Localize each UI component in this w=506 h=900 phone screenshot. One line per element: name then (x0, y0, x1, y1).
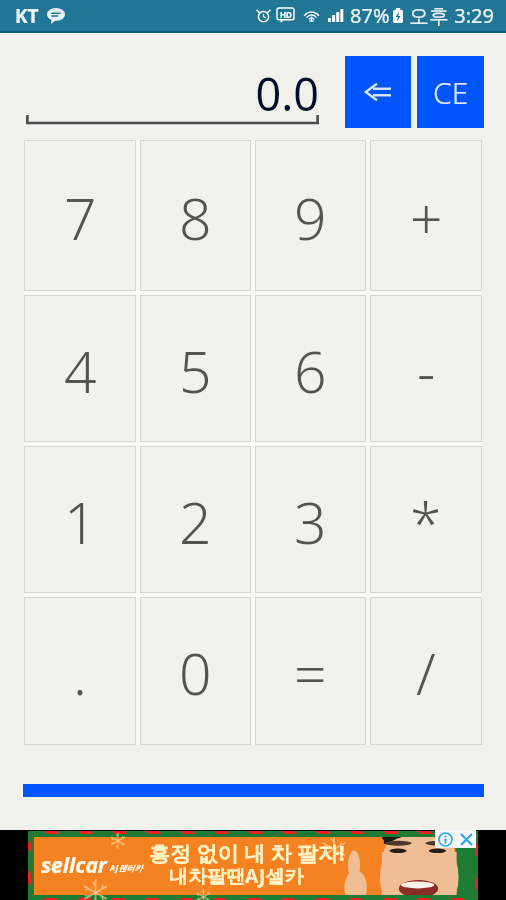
staticText: HD (280, 9, 292, 20)
staticText: . (73, 634, 87, 712)
staticText: 1 (64, 483, 97, 561)
button[interactable]: 1 (24, 446, 136, 593)
staticText: KT (15, 3, 39, 29)
staticText: 오후 3:29 (409, 2, 494, 29)
staticText: 0 (179, 634, 212, 712)
button[interactable]: 3 (255, 446, 366, 593)
button[interactable]: 4 (24, 295, 136, 442)
button[interactable]: * (370, 446, 482, 593)
staticText: 흥정 없이 내 차 팔자! (149, 839, 345, 868)
button[interactable]: 7 (24, 140, 136, 291)
staticText: 9 (294, 179, 327, 257)
staticText: 8 (179, 179, 212, 257)
button[interactable]: Close ad (456, 830, 476, 848)
staticText: 7 (64, 179, 97, 257)
staticText: 내차팔땐AJ셀카 (169, 863, 304, 889)
button[interactable]: sellcar (28, 831, 478, 900)
button[interactable]: = (255, 597, 366, 745)
button[interactable]: + (370, 140, 482, 291)
button[interactable]: . (24, 597, 136, 745)
button[interactable]: 2 (140, 446, 251, 593)
button[interactable]: 8 (140, 140, 251, 291)
button[interactable]: 0 (140, 597, 251, 745)
button[interactable]: 6 (255, 295, 366, 442)
button[interactable]: 5 (140, 295, 251, 442)
staticText: - (417, 332, 436, 410)
staticText: + (410, 179, 443, 257)
staticText: 4 (64, 332, 97, 410)
staticText: 2 (179, 483, 212, 561)
staticText: 5 (179, 332, 212, 410)
staticText: 6 (294, 332, 327, 410)
button[interactable]: / (370, 597, 482, 745)
staticText: = (294, 634, 327, 712)
button[interactable]: Backspace (345, 56, 411, 128)
staticText: CE (433, 72, 469, 113)
staticText: 3 (294, 483, 327, 561)
button[interactable]: Ad info (435, 830, 456, 848)
button[interactable]: - (370, 295, 482, 442)
staticText: / (416, 634, 436, 712)
button[interactable]: CE (417, 56, 484, 128)
staticText: AJ렌터카 (110, 862, 143, 873)
staticText: * (410, 483, 442, 561)
button[interactable]: 9 (255, 140, 366, 291)
staticText: 0.0 (26, 63, 319, 124)
staticText: 87% (350, 2, 390, 29)
staticText: sellcar (41, 851, 107, 880)
